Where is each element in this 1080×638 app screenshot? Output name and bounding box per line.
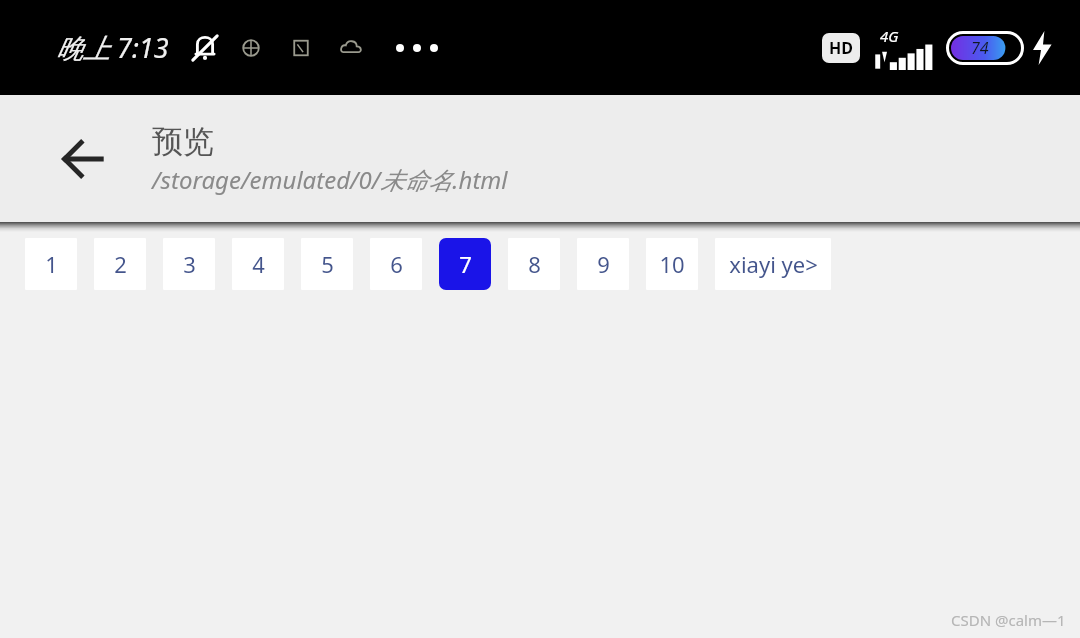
staticText: 6 — [390, 249, 403, 279]
staticText: 7 — [459, 249, 472, 279]
staticText: 8 — [528, 249, 541, 279]
staticText: xiayi ye> — [729, 249, 818, 279]
button[interactable]: 1 — [25, 238, 77, 290]
button[interactable]: 7 — [439, 238, 491, 290]
staticText: 晚上 7:13 — [56, 29, 169, 66]
staticText: 4G — [880, 26, 899, 46]
staticText: CSDN @calm—1 — [951, 610, 1066, 630]
button[interactable]: 6 — [370, 238, 422, 290]
staticText: 3 — [183, 249, 196, 279]
staticText: /storage/emulated/0/未命名.html — [152, 163, 508, 196]
staticText: 5 — [321, 249, 334, 279]
button[interactable]: 8 — [508, 238, 560, 290]
staticText: 1 — [45, 249, 58, 279]
button[interactable]: Back — [54, 130, 112, 188]
staticText: 预览 — [152, 122, 214, 161]
button[interactable]: xiayi ye> — [715, 238, 831, 290]
button[interactable]: 10 — [646, 238, 698, 290]
staticText: 4 — [252, 249, 265, 279]
button[interactable]: 3 — [163, 238, 215, 290]
staticText: 2 — [114, 249, 127, 279]
button[interactable]: 4 — [232, 238, 284, 290]
staticText: 9 — [597, 249, 610, 279]
staticText: 74 — [971, 37, 989, 59]
button[interactable]: 5 — [301, 238, 353, 290]
staticText: 10 — [659, 249, 685, 279]
staticText: HD — [829, 37, 853, 59]
button[interactable]: 9 — [577, 238, 629, 290]
button[interactable]: 2 — [94, 238, 146, 290]
